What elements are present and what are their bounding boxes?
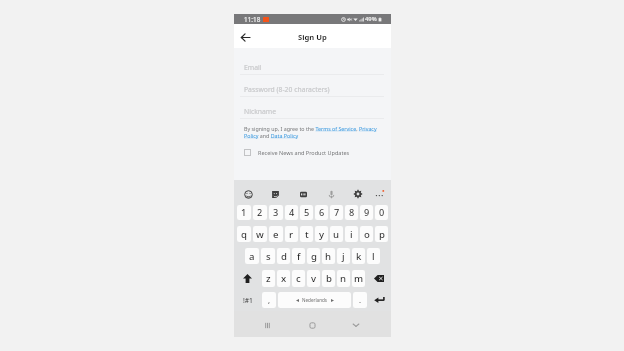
- button[interactable]: y: [315, 226, 328, 242]
- button[interactable]: Back: [237, 29, 253, 45]
- staticText: By signing up, I agree to the Terms of S…: [244, 125, 383, 139]
- staticText: x: [281, 272, 287, 285]
- button[interactable]: Enter: [368, 292, 391, 308]
- staticText: 0: [379, 206, 385, 219]
- button[interactable]: 0: [375, 205, 388, 220]
- staticText: Receive News and Product Updates: [258, 149, 350, 156]
- button[interactable]: 3: [269, 205, 283, 220]
- staticText: ,: [268, 295, 271, 305]
- button[interactable]: 9: [360, 205, 373, 220]
- staticText: m: [354, 272, 364, 285]
- button[interactable]: Password (8-20 characters): [240, 82, 384, 97]
- button[interactable]: !#1: [234, 292, 261, 308]
- button[interactable]: n: [337, 270, 350, 287]
- staticText: s: [266, 250, 271, 263]
- button[interactable]: d: [277, 248, 290, 264]
- button[interactable]: m: [352, 270, 365, 287]
- button[interactable]: 4: [285, 205, 298, 220]
- staticText: c: [296, 272, 301, 285]
- staticText: Nickname: [244, 107, 277, 116]
- button[interactable]: 6: [315, 205, 328, 220]
- button[interactable]: More options: [372, 187, 386, 201]
- staticText: 5: [304, 206, 310, 219]
- staticText: h: [325, 250, 332, 263]
- staticText: Sign Up: [298, 32, 327, 42]
- staticText: q: [241, 228, 247, 241]
- staticText: 9: [364, 206, 370, 219]
- button[interactable]: o: [360, 226, 373, 242]
- staticText: r: [289, 228, 294, 241]
- button[interactable]: GIF: [296, 187, 310, 201]
- staticText: u: [333, 228, 340, 241]
- button[interactable]: x: [277, 270, 290, 287]
- staticText: 7: [334, 206, 340, 219]
- button[interactable]: f: [292, 248, 305, 264]
- staticText: 4: [289, 206, 295, 219]
- button[interactable]: w: [253, 226, 267, 242]
- staticText: b: [326, 272, 332, 285]
- staticText: e: [273, 228, 279, 241]
- button[interactable]: q: [237, 226, 251, 242]
- button[interactable]: k: [352, 248, 365, 264]
- button[interactable]: s: [261, 248, 275, 264]
- button[interactable]: Nickname: [240, 104, 384, 119]
- button[interactable]: Shift: [234, 270, 261, 287]
- button[interactable]: r: [285, 226, 298, 242]
- staticText: l: [372, 250, 375, 263]
- staticText: i: [350, 228, 353, 241]
- button[interactable]: j: [337, 248, 350, 264]
- staticText: j: [342, 250, 345, 263]
- button[interactable]: Hide keyboard: [348, 317, 364, 333]
- staticText: Nederlands: [302, 297, 328, 303]
- button[interactable]: l: [367, 248, 380, 264]
- button[interactable]: z: [262, 270, 275, 287]
- staticText: 8: [349, 206, 355, 219]
- staticText: !#1: [243, 296, 253, 305]
- button[interactable]: Email: [240, 60, 384, 75]
- button[interactable]: Home: [304, 317, 320, 333]
- staticText: f: [297, 250, 301, 263]
- staticText: 6: [319, 206, 325, 219]
- staticText: d: [281, 250, 287, 263]
- staticText: a: [249, 250, 255, 263]
- button[interactable]: v: [307, 270, 320, 287]
- staticText: w: [256, 228, 264, 241]
- button[interactable]: Stickers: [268, 187, 282, 201]
- button[interactable]: Backspace: [366, 270, 391, 287]
- button[interactable]: b: [322, 270, 335, 287]
- staticText: k: [356, 250, 362, 263]
- button[interactable]: 7: [330, 205, 343, 220]
- staticText: v: [311, 272, 317, 285]
- button[interactable]: 8: [345, 205, 358, 220]
- staticText: g: [311, 250, 317, 263]
- button[interactable]: Nederlands: [278, 292, 351, 308]
- staticText: p: [379, 228, 385, 241]
- button[interactable]: Receive News and Product Updates: [244, 149, 350, 156]
- staticText: 49%: [365, 15, 377, 23]
- button[interactable]: Voice input: [324, 187, 338, 201]
- button[interactable]: ,: [262, 292, 276, 308]
- button[interactable]: c: [292, 270, 305, 287]
- staticText: t: [305, 228, 309, 241]
- button[interactable]: p: [375, 226, 388, 242]
- button[interactable]: 1: [237, 205, 251, 220]
- button[interactable]: Keyboard settings: [351, 187, 365, 201]
- button[interactable]: Emoji: [241, 187, 255, 201]
- staticText: Password (8-20 characters): [244, 85, 330, 94]
- button[interactable]: 5: [300, 205, 313, 220]
- button[interactable]: e: [269, 226, 283, 242]
- button[interactable]: t: [300, 226, 313, 242]
- button[interactable]: i: [345, 226, 358, 242]
- staticText: 3: [273, 206, 279, 219]
- button[interactable]: u: [330, 226, 343, 242]
- button[interactable]: h: [322, 248, 335, 264]
- button[interactable]: a: [245, 248, 259, 264]
- staticText: o: [364, 228, 370, 241]
- button[interactable]: .: [353, 292, 367, 308]
- staticText: 11:18: [244, 15, 261, 24]
- staticText: 2: [257, 206, 263, 219]
- button[interactable]: g: [307, 248, 320, 264]
- button[interactable]: 2: [253, 205, 267, 220]
- staticText: z: [266, 272, 271, 285]
- button[interactable]: Recent apps: [259, 317, 275, 333]
